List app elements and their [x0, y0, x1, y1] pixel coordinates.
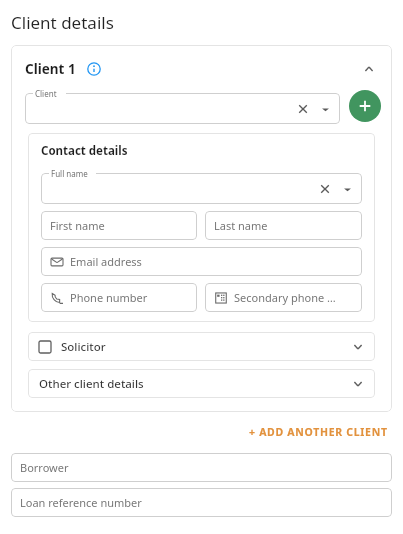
button[interactable]: Open list: [340, 182, 354, 196]
staticText: Secondary phone …: [234, 290, 336, 305]
button[interactable]: [41, 173, 362, 204]
staticText: + ADD ANOTHER CLIENT: [249, 425, 388, 439]
button[interactable]: Information: [85, 60, 103, 78]
button[interactable]: Loan reference number: [11, 488, 392, 517]
button[interactable]: + ADD ANOTHER CLIENT: [245, 420, 392, 444]
button[interactable]: Client 1: [11, 45, 392, 84]
button[interactable]: Clear: [317, 181, 333, 197]
staticText: First name: [50, 218, 105, 233]
button[interactable]: Secondary phone …: [205, 283, 362, 312]
button[interactable]: Solicitor: [28, 332, 375, 361]
staticText: Phone number: [70, 290, 148, 305]
staticText: Last name: [214, 218, 268, 233]
button[interactable]: Email address: [41, 247, 362, 276]
staticText: Contact details: [41, 143, 128, 159]
staticText: Solicitor: [61, 339, 106, 355]
button[interactable]: Phone number: [41, 283, 197, 312]
button[interactable]: First name: [41, 211, 197, 240]
button[interactable]: Clear: [295, 101, 311, 117]
staticText: Client details: [11, 11, 114, 34]
button[interactable]: [25, 93, 340, 124]
staticText: Other client details: [39, 376, 144, 392]
staticText: Full name: [51, 168, 88, 179]
staticText: Client: [35, 88, 57, 99]
button[interactable]: Add client: [349, 90, 381, 122]
button[interactable]: Borrower: [11, 453, 392, 482]
staticText: Client 1: [25, 60, 76, 78]
staticText: Loan reference number: [20, 495, 142, 510]
staticText: Email address: [70, 254, 142, 269]
button[interactable]: Collapse: [358, 58, 380, 80]
staticText: Borrower: [20, 460, 69, 475]
button[interactable]: Other client details: [28, 369, 375, 398]
button[interactable]: Open list: [318, 102, 332, 116]
button[interactable]: Last name: [205, 211, 362, 240]
